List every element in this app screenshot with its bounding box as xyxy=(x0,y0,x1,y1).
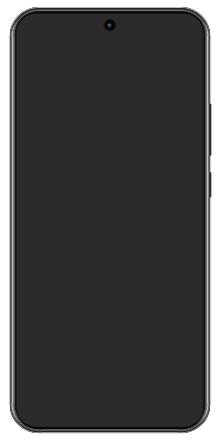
button[interactable]: Front camera xyxy=(102,17,118,33)
button[interactable]: Volume xyxy=(205,104,214,156)
button[interactable]: Power xyxy=(205,172,214,197)
button[interactable]: Screen xyxy=(17,14,203,426)
